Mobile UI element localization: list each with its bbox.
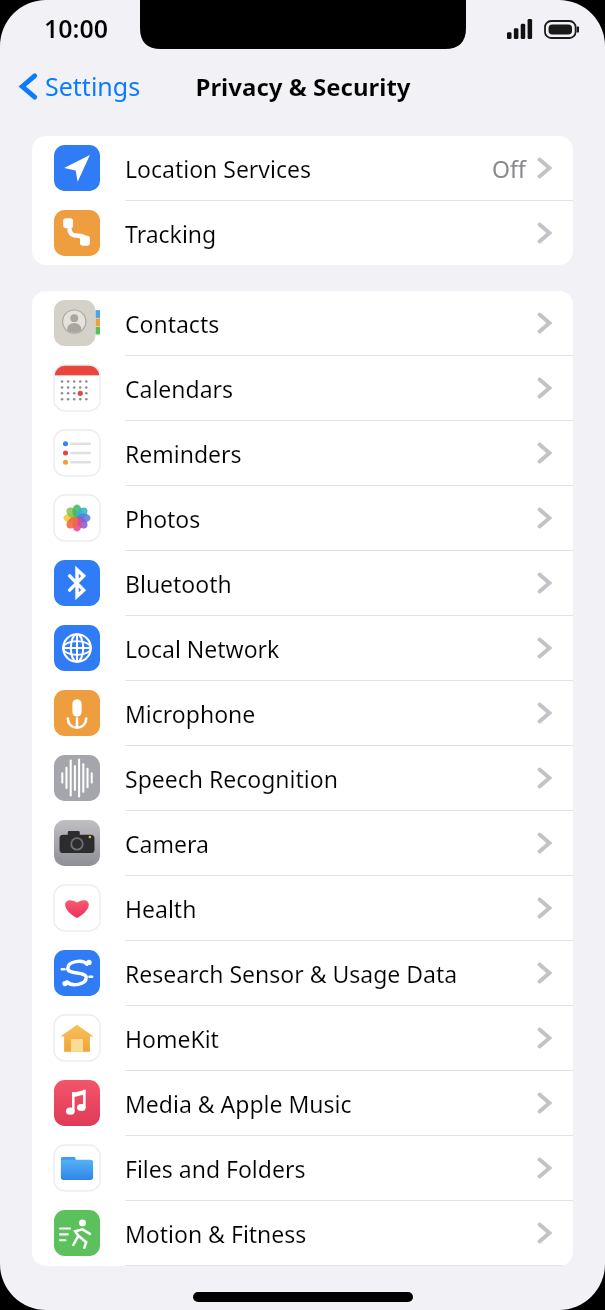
staticText: Off xyxy=(492,153,526,184)
button[interactable]: Calendars xyxy=(32,356,573,421)
button[interactable]: Research Sensor & Usage Data xyxy=(32,941,573,1006)
staticText: Media & Apple Music xyxy=(125,1088,352,1119)
button[interactable]: Microphone xyxy=(32,681,573,746)
button[interactable]: Speech Recognition xyxy=(32,746,573,811)
button[interactable]: Motion & Fitness xyxy=(32,1201,573,1266)
button[interactable]: Location Services xyxy=(32,136,573,201)
button[interactable]: Reminders xyxy=(32,421,573,486)
button[interactable]: Health xyxy=(32,876,573,941)
button[interactable]: Settings xyxy=(14,65,147,107)
staticText: Motion & Fitness xyxy=(125,1218,307,1249)
button[interactable]: Camera xyxy=(32,811,573,876)
staticText: Camera xyxy=(125,828,209,859)
staticText: HomeKit xyxy=(125,1023,219,1054)
button[interactable]: Tracking xyxy=(32,201,573,265)
staticText: Location Services xyxy=(125,153,312,184)
staticText: Research Sensor & Usage Data xyxy=(125,958,458,989)
staticText: Tracking xyxy=(125,218,217,249)
staticText: Settings xyxy=(45,69,141,103)
staticText: Local Network xyxy=(125,633,280,664)
staticText: Calendars xyxy=(125,373,234,404)
button[interactable]: Files and Folders xyxy=(32,1136,573,1201)
staticText: Bluetooth xyxy=(125,568,232,599)
staticText: Speech Recognition xyxy=(125,763,338,794)
button[interactable]: Local Network xyxy=(32,616,573,681)
button[interactable]: Bluetooth xyxy=(32,551,573,616)
button[interactable]: Contacts xyxy=(32,291,573,356)
button[interactable]: Photos xyxy=(32,486,573,551)
staticText: Files and Folders xyxy=(125,1153,306,1184)
staticText: Photos xyxy=(125,503,201,534)
staticText: 10:00 xyxy=(44,11,109,45)
staticText: Health xyxy=(125,893,197,924)
button[interactable]: HomeKit xyxy=(32,1006,573,1071)
staticText: Privacy & Security xyxy=(195,70,411,103)
staticText: Reminders xyxy=(125,438,242,469)
staticText: Microphone xyxy=(125,698,256,729)
button[interactable]: Media & Apple Music xyxy=(32,1071,573,1136)
staticText: Contacts xyxy=(125,308,220,339)
